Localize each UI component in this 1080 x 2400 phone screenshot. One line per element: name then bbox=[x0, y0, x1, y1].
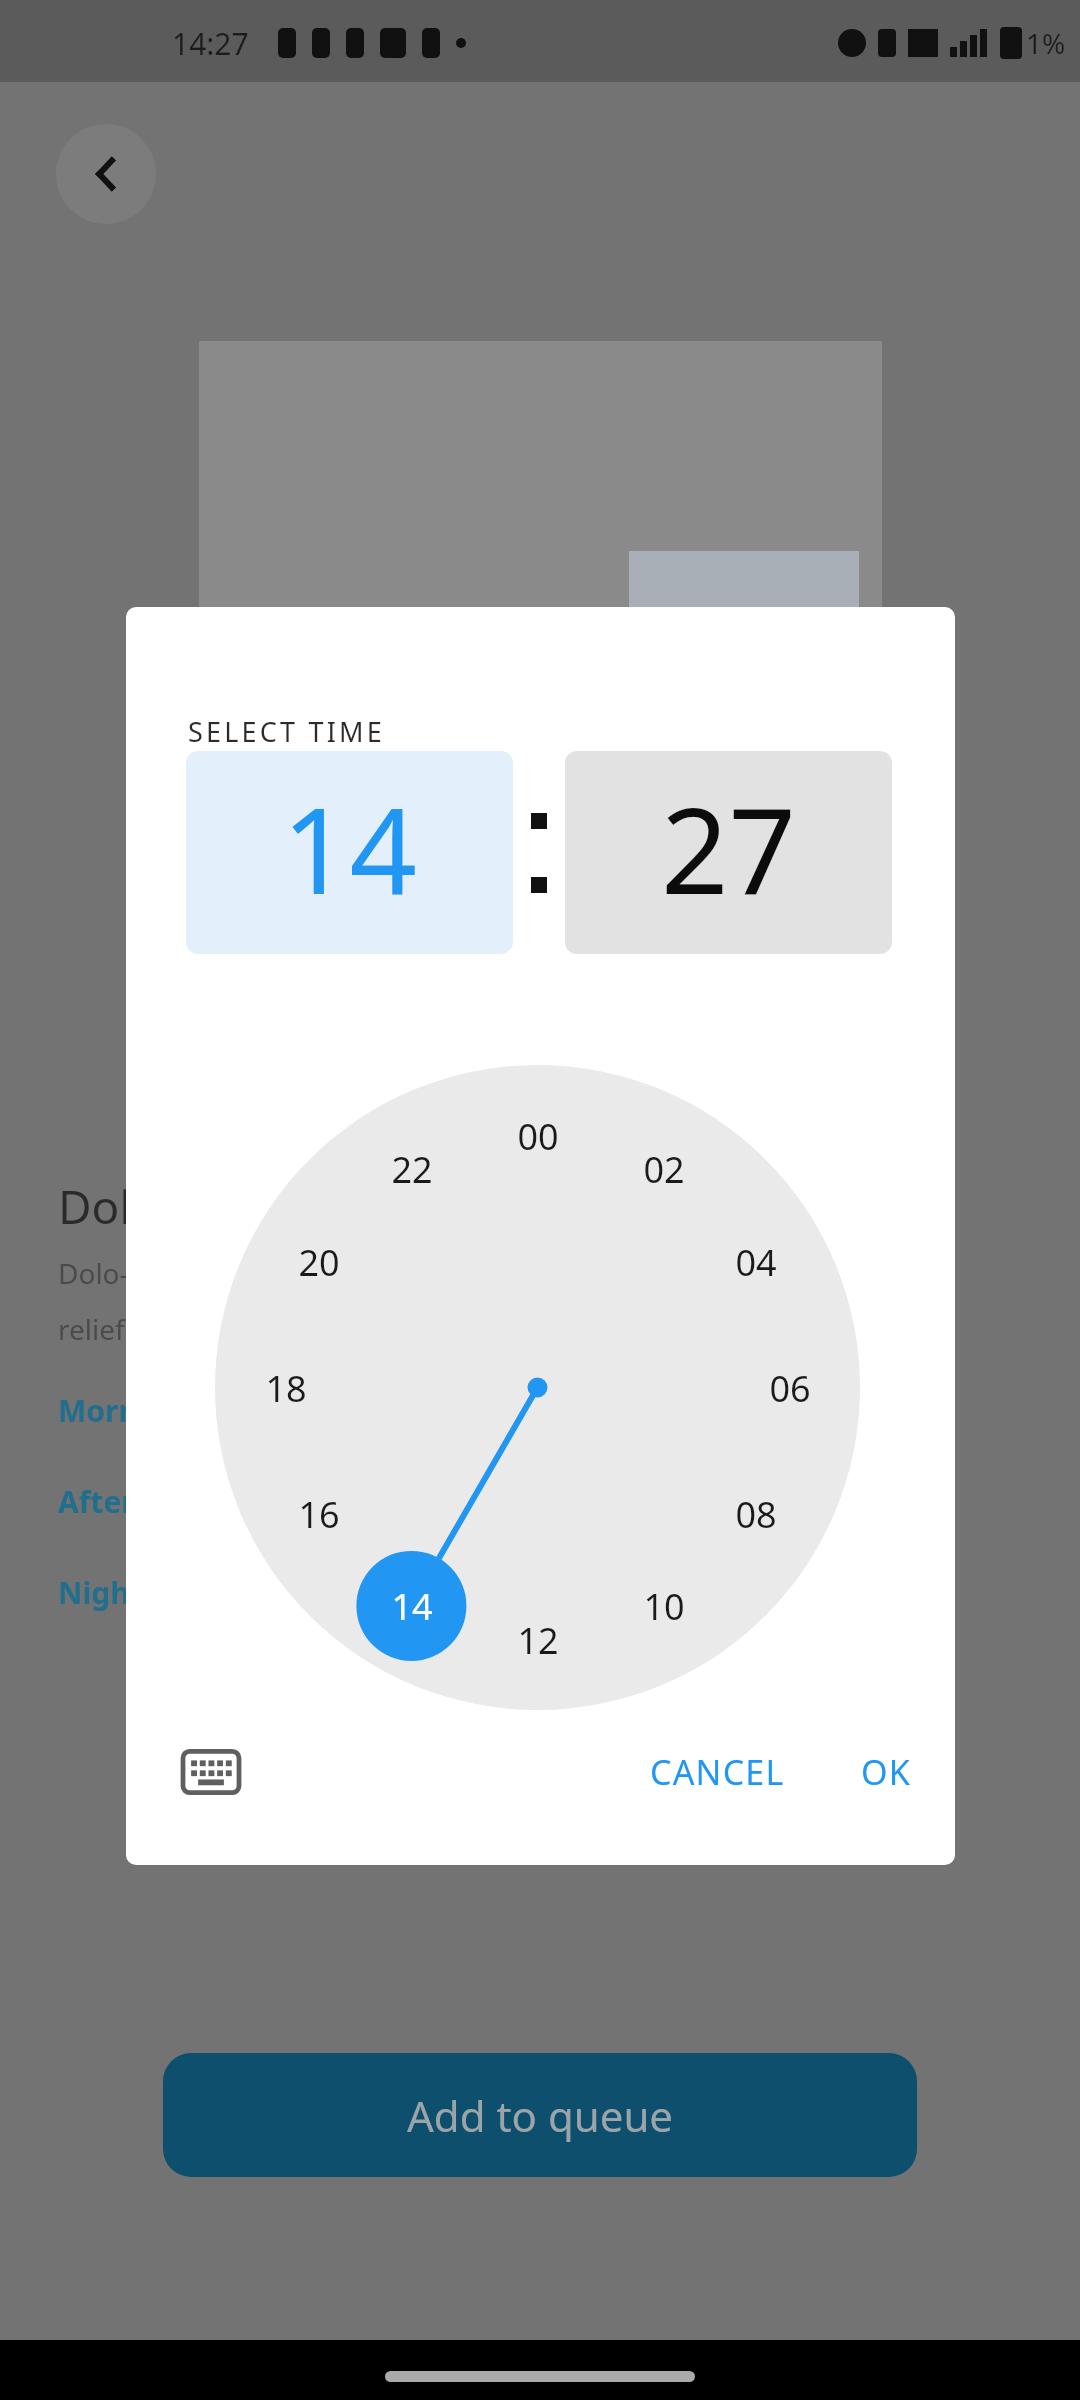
staticText: 12 bbox=[517, 1616, 559, 1665]
staticText: 20 bbox=[298, 1238, 340, 1287]
staticText: 00 bbox=[517, 1112, 559, 1161]
staticText: 14:27 bbox=[172, 23, 249, 64]
button[interactable]: OK bbox=[837, 1733, 935, 1811]
button[interactable]: 00 bbox=[215, 1065, 860, 1710]
button[interactable]: Back bbox=[56, 124, 156, 224]
staticText: 08 bbox=[735, 1490, 777, 1539]
staticText: Dolo-650 is a medicine used for bbox=[58, 1254, 472, 1292]
staticText: 27 bbox=[661, 768, 796, 929]
staticText: OK bbox=[861, 1749, 911, 1795]
staticText: 14 bbox=[391, 1582, 433, 1631]
button[interactable]: 14 bbox=[186, 751, 513, 954]
staticText: 1% bbox=[1026, 24, 1066, 62]
staticText: 14 bbox=[282, 768, 417, 929]
staticText: Add to queue bbox=[407, 2087, 674, 2144]
button[interactable]: 27 bbox=[565, 751, 892, 954]
staticText: SELECT TIME bbox=[188, 713, 385, 750]
staticText: 22 bbox=[391, 1145, 433, 1194]
button[interactable]: CANCEL bbox=[626, 1733, 809, 1811]
staticText: 02 bbox=[643, 1145, 685, 1194]
button[interactable]: Add to queue bbox=[163, 2053, 917, 2177]
staticText: CANCEL bbox=[650, 1749, 785, 1795]
staticText: 18 bbox=[265, 1364, 307, 1413]
staticText: Morning bbox=[58, 1390, 186, 1431]
staticText: Afternoon bbox=[58, 1481, 212, 1522]
button[interactable]: Switch to text input bbox=[166, 1727, 256, 1817]
staticText: relief of pain and fever bbox=[58, 1310, 355, 1348]
staticText: 04 bbox=[735, 1238, 777, 1287]
staticText: 16 bbox=[298, 1490, 340, 1539]
staticText: 10 bbox=[643, 1582, 685, 1631]
staticText: Night bbox=[58, 1572, 143, 1613]
staticText: 06 bbox=[769, 1364, 811, 1413]
staticText: Dolo 650 bbox=[58, 1175, 251, 1238]
